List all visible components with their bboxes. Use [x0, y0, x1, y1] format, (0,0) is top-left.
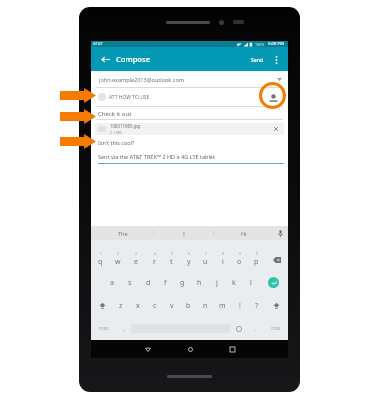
staticText: k	[232, 278, 236, 288]
button[interactable]: l	[242, 271, 259, 294]
button[interactable]: j	[208, 271, 225, 294]
button[interactable]: More options	[270, 53, 283, 66]
button[interactable]: Shift	[265, 294, 288, 317]
button[interactable]: v	[163, 294, 180, 317]
staticText: john.example2013@outlook.com	[99, 76, 184, 83]
staticText: j	[216, 278, 218, 288]
button[interactable]: 5	[163, 248, 180, 271]
staticText: e	[134, 257, 138, 267]
button[interactable]: 0	[248, 248, 265, 271]
button[interactable]: Shift	[91, 294, 113, 317]
staticText: 108311985.jpg	[110, 123, 141, 129]
staticText: m	[219, 301, 226, 311]
button[interactable]: Backspace	[265, 248, 288, 271]
button[interactable]: Home	[169, 340, 211, 358]
staticText: AT&T	[93, 41, 103, 47]
button[interactable]: h	[191, 271, 208, 294]
button[interactable]: ?123	[263, 317, 288, 340]
button[interactable]: m	[214, 294, 231, 317]
button[interactable]: 4	[145, 248, 163, 271]
button[interactable]: ?123	[91, 317, 116, 340]
staticText: 2	[117, 252, 119, 256]
button[interactable]: Hi	[214, 226, 273, 240]
button[interactable]: z	[113, 294, 129, 317]
button[interactable]: Emoji	[230, 317, 248, 340]
button[interactable]: 1	[91, 248, 109, 271]
staticText: !	[239, 301, 241, 311]
staticText: i	[222, 257, 224, 267]
button[interactable]: Recent apps	[211, 340, 253, 358]
button[interactable]: john.example2013@outlook.com	[99, 75, 282, 84]
button[interactable]: Send	[248, 51, 267, 68]
staticText: ,	[123, 325, 125, 333]
staticText: q	[98, 257, 103, 267]
staticText: 3	[135, 252, 137, 256]
staticText: 6	[188, 252, 190, 256]
button[interactable]: 108311985.jpg	[95, 123, 284, 135]
button[interactable]: 9	[231, 248, 248, 271]
staticText: a	[110, 278, 114, 288]
staticText: f	[164, 278, 167, 288]
staticText: 8	[222, 252, 224, 256]
staticText: Isn't this cool?	[98, 139, 135, 146]
staticText: The	[118, 230, 128, 237]
staticText: I	[183, 230, 185, 237]
button[interactable]: b	[180, 294, 197, 317]
button[interactable]: Back	[127, 340, 169, 358]
staticText: s	[128, 278, 132, 288]
staticText: p	[254, 257, 259, 267]
button[interactable]: Back	[97, 51, 114, 68]
staticText: 5	[171, 252, 173, 256]
button[interactable]: f	[157, 271, 174, 294]
button[interactable]: ,	[116, 317, 131, 340]
staticText: 100%	[255, 42, 265, 47]
button[interactable]: I	[154, 226, 213, 240]
staticText: 7	[205, 252, 207, 256]
button[interactable]: 3	[127, 248, 145, 271]
staticText: n	[203, 301, 208, 311]
staticText: o	[237, 257, 242, 267]
button[interactable]: a	[103, 271, 121, 294]
staticText: h	[197, 278, 202, 288]
staticText: z	[119, 301, 123, 311]
staticText: g	[180, 278, 185, 288]
button[interactable]: ATT HOW TO USE	[98, 88, 280, 106]
staticText: .	[255, 325, 257, 333]
button[interactable]: 2	[109, 248, 127, 271]
staticText: d	[146, 278, 151, 288]
button[interactable]: k	[225, 271, 242, 294]
staticText: 0	[256, 252, 258, 256]
staticText: b	[186, 301, 191, 311]
button[interactable]: s	[121, 271, 139, 294]
button[interactable]: 7	[197, 248, 214, 271]
button[interactable]: n	[197, 294, 214, 317]
staticText: ?	[255, 301, 259, 311]
staticText: ?123	[99, 326, 109, 332]
button[interactable]: 8	[214, 248, 231, 271]
staticText: Send	[251, 56, 264, 63]
button[interactable]: Isn't this cool?	[98, 139, 282, 146]
button[interactable]: d	[139, 271, 157, 294]
button[interactable]: c	[146, 294, 163, 317]
staticText: ATT HOW TO USE	[109, 94, 150, 101]
staticText: y	[187, 257, 191, 267]
button[interactable]: Voice input	[273, 226, 288, 240]
button[interactable]: !	[231, 294, 248, 317]
button[interactable]: 6	[180, 248, 197, 271]
button[interactable]: Remove attachment	[271, 124, 281, 134]
button[interactable]: x	[129, 294, 146, 317]
button[interactable]: Enter	[259, 271, 288, 294]
button[interactable]: Add contact	[267, 91, 280, 104]
button[interactable]: g	[174, 271, 191, 294]
staticText: Check it out	[98, 110, 132, 118]
staticText: u	[203, 257, 208, 267]
staticText: Hi	[241, 230, 247, 237]
button[interactable]: The	[93, 226, 153, 240]
staticText: 5:08 PM	[268, 41, 284, 47]
staticText: x	[136, 301, 140, 311]
staticText: t	[170, 257, 173, 267]
button[interactable]: ?	[248, 294, 265, 317]
button[interactable]: Check it out	[98, 110, 282, 118]
